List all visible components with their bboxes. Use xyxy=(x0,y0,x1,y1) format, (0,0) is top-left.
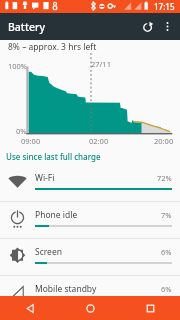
staticText: 72% xyxy=(157,173,172,183)
button[interactable]: More options xyxy=(156,13,178,40)
staticText: Screen xyxy=(35,246,62,258)
staticText: 100% xyxy=(8,61,28,71)
staticText: Wi-Fi xyxy=(35,172,55,184)
staticText: 27/11 xyxy=(91,59,111,69)
button[interactable]: Recent apps xyxy=(120,296,180,320)
staticText: 09:00 xyxy=(21,136,41,146)
button[interactable]: Mobile standby xyxy=(0,276,180,313)
button[interactable]: Refresh xyxy=(132,13,156,40)
staticText: 6% xyxy=(161,284,172,294)
staticText: Phone idle xyxy=(35,209,78,221)
button[interactable]: Phone idle xyxy=(0,202,180,239)
staticText: 7% xyxy=(161,210,172,220)
button[interactable]: Back xyxy=(0,296,60,320)
staticText: 0% xyxy=(16,126,27,136)
staticText: 8% – approx. 3 hrs left xyxy=(8,41,180,53)
staticText: 20:00 xyxy=(154,136,174,146)
button[interactable]: Screen xyxy=(0,239,180,276)
staticText: 02:00 xyxy=(89,136,109,146)
staticText: Use since last full charge xyxy=(6,151,101,162)
staticText: 6% xyxy=(161,247,172,257)
button[interactable]: Home xyxy=(60,296,120,320)
button[interactable]: Wi-Fi xyxy=(0,165,180,202)
staticText: Mobile standby xyxy=(35,283,97,295)
staticText: Battery xyxy=(8,20,45,34)
staticText: 17:15 xyxy=(154,1,175,12)
